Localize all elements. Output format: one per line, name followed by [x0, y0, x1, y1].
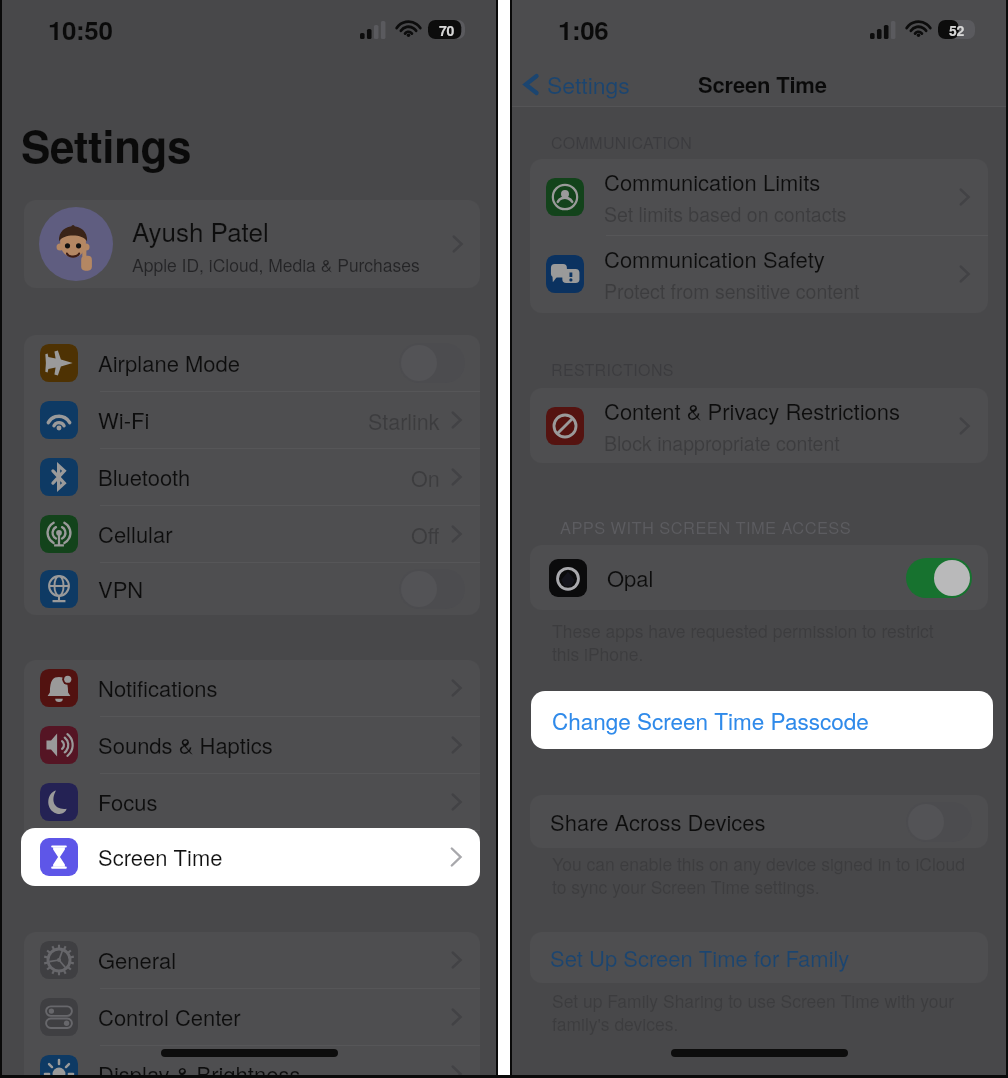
button[interactable]: Communication Limits	[530, 159, 988, 235]
staticText: Settings	[547, 68, 630, 101]
staticText: Bluetooth	[98, 461, 191, 493]
staticText: Change Screen Time Passcode	[552, 704, 869, 736]
button[interactable]: Switch off	[399, 343, 465, 383]
staticText: Display & Brightness	[98, 1058, 301, 1078]
staticText: Protect from sensitive content	[604, 277, 860, 305]
staticText: Control Center	[98, 1001, 241, 1033]
staticText: VPN	[98, 573, 144, 605]
button[interactable]: VPN	[24, 563, 480, 615]
button[interactable]: Switch off	[399, 569, 465, 609]
button[interactable]: Settings	[516, 63, 638, 106]
staticText: Set up Family Sharing to use Screen Time…	[552, 988, 954, 1036]
staticText: Share Across Devices	[550, 806, 766, 838]
staticText: Set limits based on contacts	[604, 200, 847, 228]
staticText: On	[411, 462, 440, 493]
staticText: APPS WITH SCREEN TIME ACCESS	[560, 515, 852, 539]
staticText: Set Up Screen Time for Family	[550, 942, 850, 974]
button[interactable]: Switch on	[906, 558, 972, 598]
staticText: Settings	[21, 113, 192, 176]
staticText: Starlink	[368, 405, 440, 436]
button[interactable]: Change Screen Time Passcode	[531, 691, 993, 749]
button[interactable]: Content & Privacy Restrictions	[530, 388, 988, 463]
button[interactable]: Cellular	[24, 506, 480, 562]
staticText: Focus	[98, 786, 158, 818]
staticText: Sounds & Haptics	[98, 729, 273, 761]
staticText: General	[98, 944, 177, 976]
staticText: COMMUNICATION	[551, 131, 693, 154]
staticText: You can enable this on any device signed…	[552, 851, 965, 899]
staticText: Off	[411, 519, 440, 550]
staticText: Screen Time	[98, 841, 223, 873]
staticText: Screen Time	[698, 68, 827, 100]
staticText: Content & Privacy Restrictions	[604, 395, 900, 427]
button[interactable]: Opal	[530, 545, 988, 610]
button[interactable]: Sounds & Haptics	[24, 717, 480, 773]
button[interactable]: General	[24, 932, 480, 988]
button[interactable]: Wi-Fi	[24, 392, 480, 448]
staticText: Block inappropriate content	[604, 429, 840, 457]
button[interactable]: Ayush Patel	[24, 200, 480, 288]
staticText: 70	[439, 20, 454, 39]
staticText: Notifications	[98, 672, 218, 704]
staticText: Ayush Patel	[132, 212, 269, 249]
button[interactable]: Set Up Screen Time for Family	[530, 932, 988, 983]
button[interactable]: Communication Safety	[530, 236, 988, 312]
button[interactable]: Screen Time	[24, 831, 480, 886]
button[interactable]: Switch off	[906, 802, 972, 842]
staticText: Communication Safety	[604, 243, 825, 275]
staticText: Airplane Mode	[98, 347, 241, 379]
button[interactable]: Screen Time	[21, 828, 480, 886]
staticText: Wi-Fi	[98, 404, 150, 436]
staticText: Screen Time	[98, 843, 223, 875]
button[interactable]: Share Across Devices	[530, 795, 988, 848]
staticText: RESTRICTIONS	[551, 358, 674, 381]
button[interactable]: Display & Brightness	[24, 1046, 480, 1078]
staticText: Apple ID, iCloud, Media & Purchases	[132, 252, 420, 277]
staticText: 52	[949, 20, 964, 39]
staticText: Communication Limits	[604, 166, 821, 198]
staticText: 10:50	[48, 11, 113, 48]
button[interactable]: Airplane Mode	[24, 335, 480, 391]
button[interactable]: Bluetooth	[24, 449, 480, 505]
button[interactable]: Focus	[24, 774, 480, 830]
button[interactable]: Control Center	[24, 989, 480, 1045]
staticText: Cellular	[98, 518, 173, 550]
staticText: 1:06	[558, 11, 609, 48]
button[interactable]: Notifications	[24, 660, 480, 716]
staticText: Opal	[607, 562, 654, 594]
